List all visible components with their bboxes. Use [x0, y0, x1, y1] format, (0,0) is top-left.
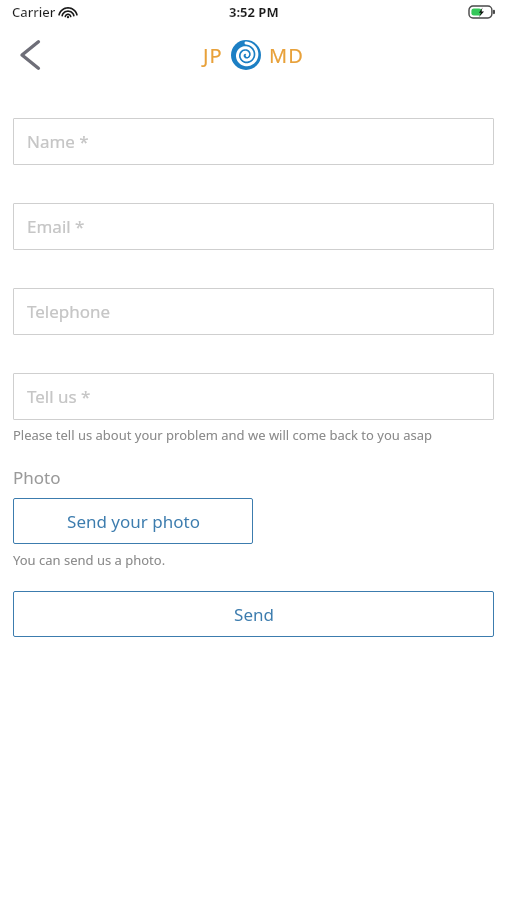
staticText: Name * — [27, 130, 89, 153]
staticText: Please tell us about your problem and we… — [13, 426, 433, 444]
staticText: Send — [234, 603, 274, 626]
button[interactable]: Back — [8, 33, 52, 77]
staticText: JP — [203, 42, 223, 69]
button[interactable]: Send your photo — [13, 498, 253, 544]
staticText: You can send us a photo. — [13, 551, 166, 569]
staticText: Send your photo — [67, 510, 200, 533]
button[interactable]: Tell us * — [13, 373, 494, 420]
staticText: 3:52 PM — [229, 3, 279, 21]
button[interactable]: Send — [13, 591, 494, 637]
button[interactable]: Name * — [13, 118, 494, 165]
staticText: MD — [269, 42, 304, 69]
button[interactable]: Email * — [13, 203, 494, 250]
staticText: Carrier — [12, 3, 56, 21]
staticText: Telephone — [27, 300, 111, 323]
button[interactable]: Telephone — [13, 288, 494, 335]
staticText: Photo — [13, 466, 61, 489]
staticText: Email * — [27, 215, 85, 238]
staticText: Tell us * — [27, 385, 91, 408]
